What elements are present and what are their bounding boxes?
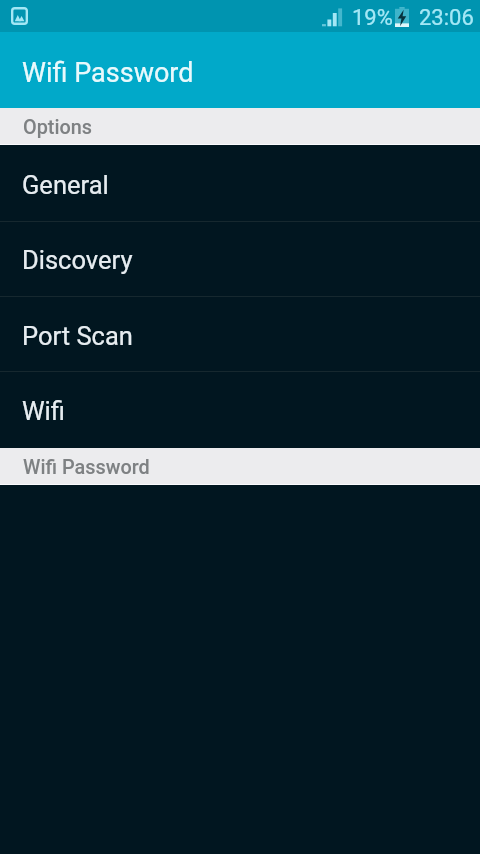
staticText: 19% bbox=[352, 5, 393, 31]
staticText: Options bbox=[23, 116, 92, 139]
other: Screenshot captured bbox=[11, 7, 28, 25]
button[interactable]: Port Scan bbox=[0, 297, 480, 371]
button[interactable]: Wifi bbox=[0, 372, 480, 448]
staticText: Wifi Password bbox=[22, 57, 194, 89]
button[interactable]: General bbox=[0, 145, 480, 221]
button[interactable]: Wifi Password bbox=[0, 32, 480, 108]
staticText: General bbox=[22, 170, 109, 200]
button[interactable]: Discovery bbox=[0, 222, 480, 296]
staticText: Wifi Password bbox=[23, 456, 150, 479]
staticText: Port Scan bbox=[22, 321, 133, 351]
other: Battery 19 percent, charging bbox=[395, 7, 409, 27]
staticText: Wifi bbox=[22, 396, 65, 426]
staticText: Discovery bbox=[22, 245, 133, 275]
staticText: 23:06 bbox=[419, 5, 474, 31]
other: Mobile signal strength bbox=[322, 8, 343, 27]
